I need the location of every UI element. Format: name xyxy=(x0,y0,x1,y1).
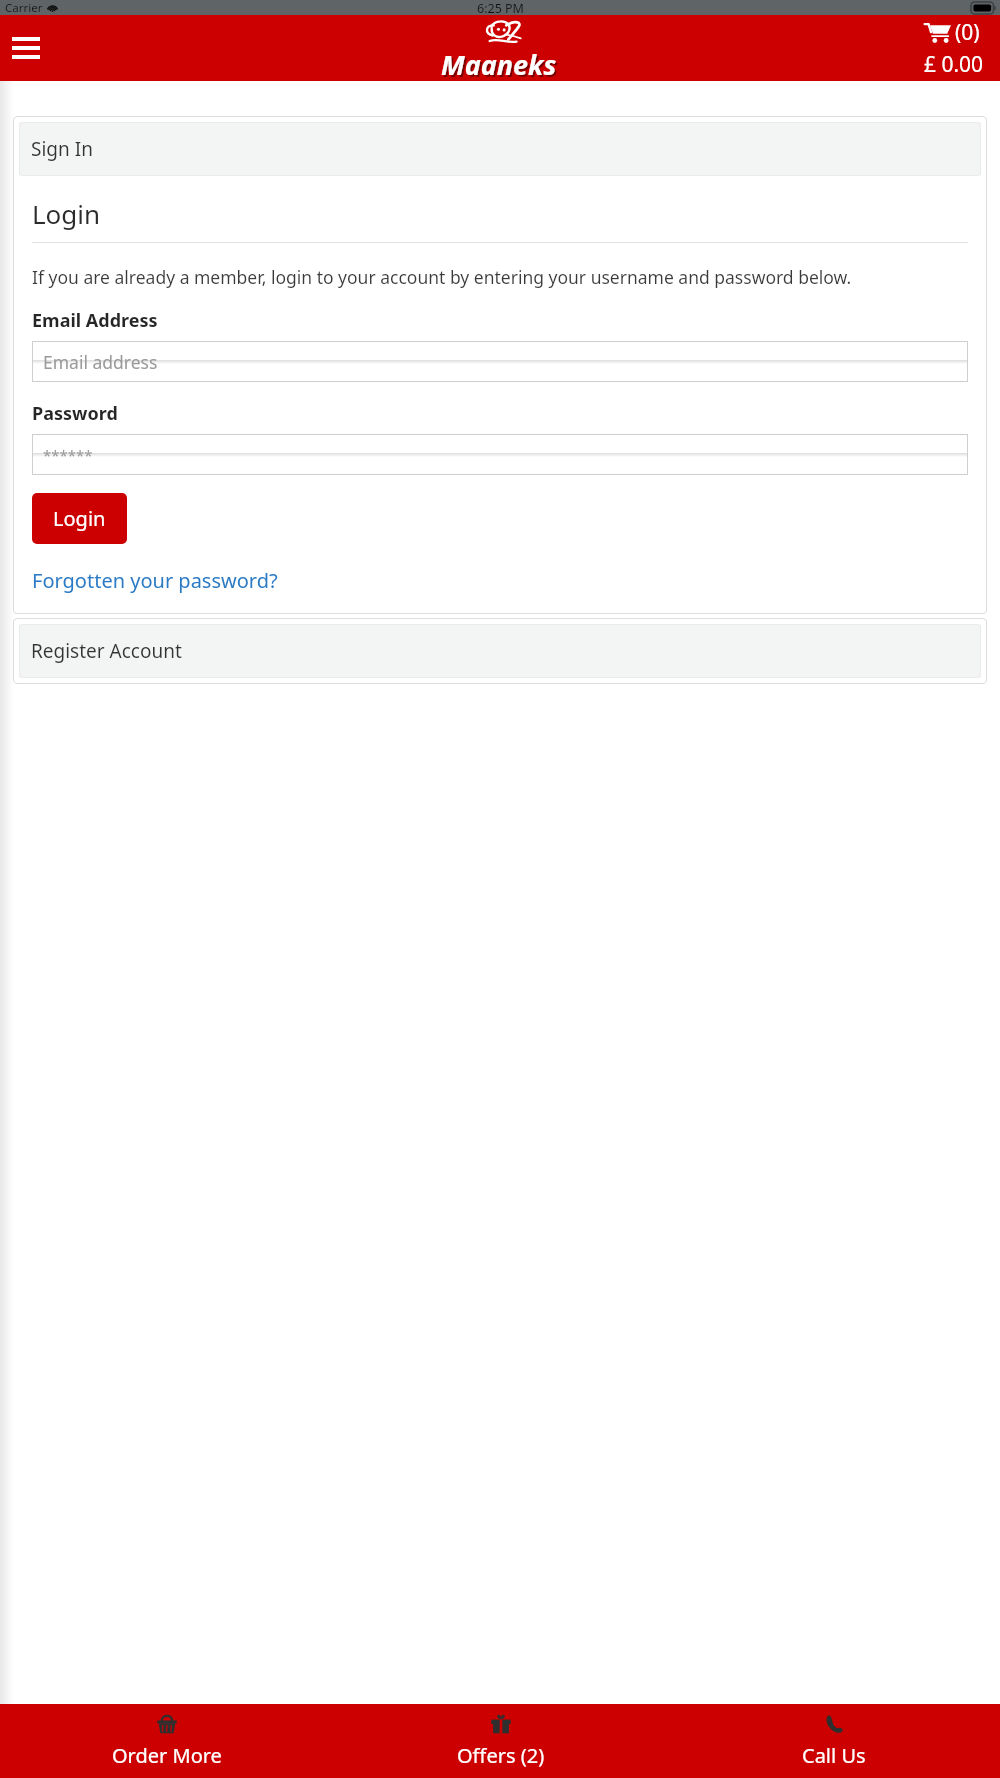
staticText: Sign In xyxy=(31,136,93,162)
button[interactable]: Maaneks home xyxy=(441,17,559,81)
staticText: Offers (2) xyxy=(457,1742,545,1769)
button[interactable]: Call Us xyxy=(667,1704,1000,1778)
staticText: £ 0.00 xyxy=(924,50,984,79)
staticText: Order More xyxy=(112,1742,222,1769)
staticText: Register Account xyxy=(31,638,182,664)
staticText: Email address xyxy=(43,350,158,374)
staticText: If you are already a member, login to yo… xyxy=(32,265,852,289)
button[interactable]: Basket, 0 items, total 0.00 pounds xyxy=(924,18,984,79)
button[interactable]: Register Account xyxy=(19,624,981,678)
staticText: Login xyxy=(53,505,106,532)
staticText: Carrier xyxy=(5,0,43,15)
button[interactable]: Forgotten your password? xyxy=(32,567,278,594)
button[interactable]: Sign In xyxy=(19,122,981,176)
staticText: Login xyxy=(32,196,101,231)
button[interactable]: Order More xyxy=(0,1704,334,1778)
button[interactable]: Menu xyxy=(8,26,44,70)
button[interactable]: ****** xyxy=(32,434,968,475)
staticText: Forgotten your password? xyxy=(32,567,278,594)
staticText: ****** xyxy=(43,445,93,465)
staticText: (0) xyxy=(955,18,980,47)
staticText: Maaneks xyxy=(441,46,557,81)
staticText: Maaneks xyxy=(443,48,559,81)
staticText: Email Address xyxy=(32,308,158,333)
staticText: Call Us xyxy=(802,1742,866,1769)
button[interactable]: Login xyxy=(32,493,127,544)
button[interactable]: Email address xyxy=(32,341,968,382)
button[interactable]: Offers (2) xyxy=(334,1704,667,1778)
staticText: Password xyxy=(32,401,118,426)
staticText: 6:25 PM xyxy=(477,0,524,15)
